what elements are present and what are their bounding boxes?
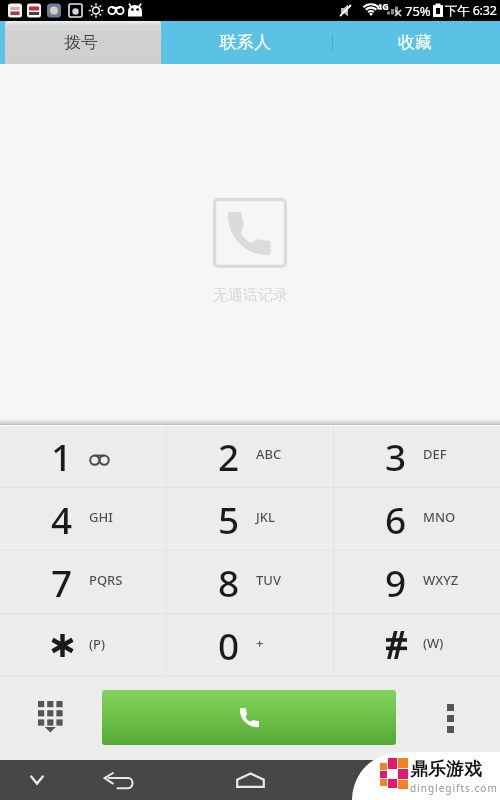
staticText: 无通话记录 — [213, 286, 288, 305]
button[interactable]: 拨号 — [0, 21, 161, 64]
staticText: 收藏 — [398, 32, 432, 53]
staticText: 鼎乐游戏 — [410, 758, 482, 781]
staticText: 拨号 — [64, 32, 98, 53]
button[interactable]: 8 — [167, 551, 333, 613]
staticText: 2 — [218, 431, 240, 481]
staticText: + — [256, 634, 264, 652]
staticText: 下午 6:32 — [445, 2, 497, 19]
staticText: 5 — [218, 494, 240, 544]
staticText: MNO — [423, 508, 456, 526]
button[interactable]: 4 — [0, 488, 166, 550]
button[interactable]: 0 — [167, 614, 333, 676]
staticText: 4G — [377, 0, 389, 12]
button[interactable]: Home — [219, 760, 281, 800]
staticText: 9 — [385, 557, 407, 607]
staticText: DEF — [423, 445, 447, 463]
button[interactable]: 5 — [167, 488, 333, 550]
button[interactable]: 7 — [0, 551, 166, 613]
staticText: PQRS — [89, 571, 123, 589]
button[interactable]: Call — [102, 690, 396, 745]
staticText: 4 — [51, 494, 73, 544]
staticText: 0 — [218, 620, 240, 670]
staticText: dinglegifts.com — [410, 781, 498, 795]
staticText: GHI — [89, 508, 113, 526]
button[interactable]: (W) — [334, 614, 500, 676]
button[interactable]: Back — [88, 760, 150, 800]
button[interactable]: Hide navigation bar — [6, 760, 68, 800]
button[interactable]: 联系人 — [161, 21, 330, 64]
button[interactable]: 9 — [334, 551, 500, 613]
staticText: 8 — [218, 557, 240, 607]
staticText: JKL — [256, 508, 275, 526]
staticText: TUV — [256, 571, 281, 589]
button[interactable]: 收藏 — [330, 21, 500, 64]
button[interactable]: (P) — [0, 614, 166, 676]
staticText: ABC — [256, 445, 282, 463]
button[interactable]: 1 — [0, 425, 166, 487]
staticText: 3 — [385, 431, 407, 481]
button[interactable]: Hide keypad — [20, 687, 80, 749]
staticText: (P) — [89, 635, 106, 653]
staticText: WXYZ — [423, 571, 459, 589]
staticText: 7 — [51, 557, 73, 607]
staticText: (W) — [423, 634, 444, 652]
button[interactable]: 6 — [334, 488, 500, 550]
button[interactable]: 3 — [334, 425, 500, 487]
button[interactable]: 2 — [167, 425, 333, 487]
staticText: 联系人 — [220, 32, 271, 53]
button[interactable]: More options — [420, 687, 480, 749]
staticText: 6 — [385, 494, 407, 544]
staticText: 75% — [405, 2, 431, 20]
staticText: 1 — [51, 431, 73, 481]
